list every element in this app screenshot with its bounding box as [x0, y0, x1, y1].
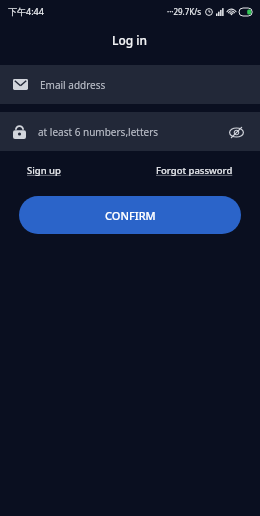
- staticText: at least 6 numbers,letters: [38, 125, 159, 139]
- staticText: Log in: [112, 32, 148, 48]
- staticText: Sign up: [27, 164, 61, 177]
- button[interactable]: at least 6 numbers,letters: [0, 112, 260, 151]
- button[interactable]: Sign up: [27, 161, 61, 180]
- button[interactable]: CONFIRM: [19, 196, 241, 234]
- staticText: 下午4:44: [8, 5, 44, 17]
- staticText: Forgot password: [156, 164, 233, 177]
- button[interactable]: Email address: [0, 65, 260, 104]
- staticText: CONFIRM: [105, 208, 156, 223]
- staticText: Email address: [40, 78, 106, 92]
- button[interactable]: Show password: [225, 121, 247, 143]
- staticText: ···29.7K/s: [167, 6, 202, 17]
- button[interactable]: Forgot password: [156, 161, 233, 180]
